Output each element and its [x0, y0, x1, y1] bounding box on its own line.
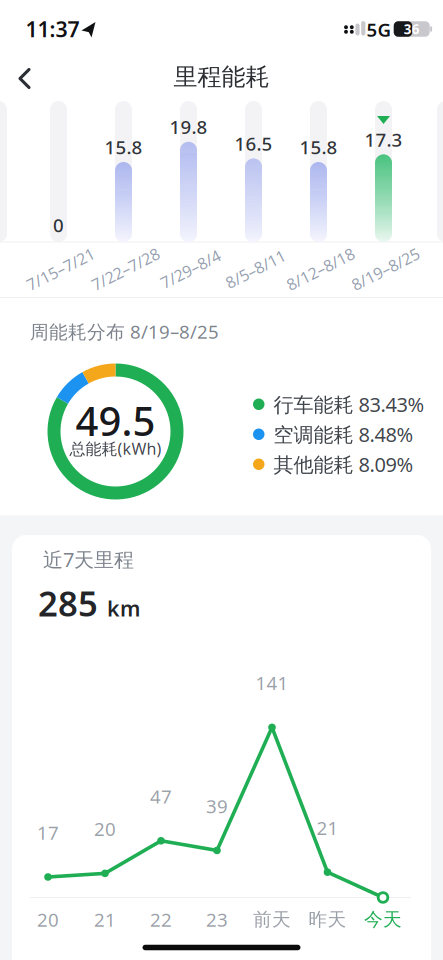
staticText: 17 [37, 820, 59, 845]
staticText: 47 [150, 784, 172, 809]
staticText: 8/19–8/25 [348, 258, 422, 280]
staticText: 总能耗(kWh) [69, 438, 161, 459]
staticText: 20 [37, 907, 59, 932]
staticText: 0 [53, 213, 64, 237]
staticText: 16.5 [234, 131, 272, 156]
staticText: 8/12–8/18 [283, 258, 357, 280]
staticText: 今天 [364, 908, 402, 931]
staticText: 15.8 [299, 135, 337, 159]
staticText: 21 [316, 815, 338, 840]
staticText: 22 [150, 907, 172, 932]
staticText: 15.8 [104, 135, 142, 159]
staticText: 39 [206, 793, 228, 818]
staticText: 11:37 [25, 15, 79, 43]
staticText: 近7天里程 [43, 546, 134, 573]
staticText: 8/5–8/11 [223, 258, 288, 280]
staticText: 36 [404, 20, 420, 38]
staticText: 17.3 [364, 127, 402, 152]
staticText: 里程能耗 [173, 62, 269, 92]
staticText: 前天 [253, 908, 291, 931]
staticText: 20 [94, 816, 116, 841]
staticText: 7/29–8/4 [158, 258, 223, 280]
staticText: 7/15–7/21 [23, 258, 97, 280]
staticText: 19.8 [169, 114, 207, 139]
staticText: 空调能耗 8.48% [273, 421, 413, 448]
staticText: 49.5 [75, 394, 155, 447]
staticText: 141 [255, 670, 288, 695]
staticText: 行车能耗 83.43% [273, 391, 424, 418]
staticText: 285 [38, 580, 98, 626]
staticText: km [107, 594, 140, 622]
staticText: 5G [366, 17, 391, 42]
staticText: 周能耗分布 8/19–8/25 [30, 319, 219, 344]
staticText: 其他能耗 8.09% [273, 451, 413, 478]
staticText: 昨天 [308, 908, 346, 931]
staticText: 21 [94, 907, 116, 932]
staticText: 7/22–7/28 [88, 258, 162, 280]
staticText: 23 [206, 907, 228, 932]
